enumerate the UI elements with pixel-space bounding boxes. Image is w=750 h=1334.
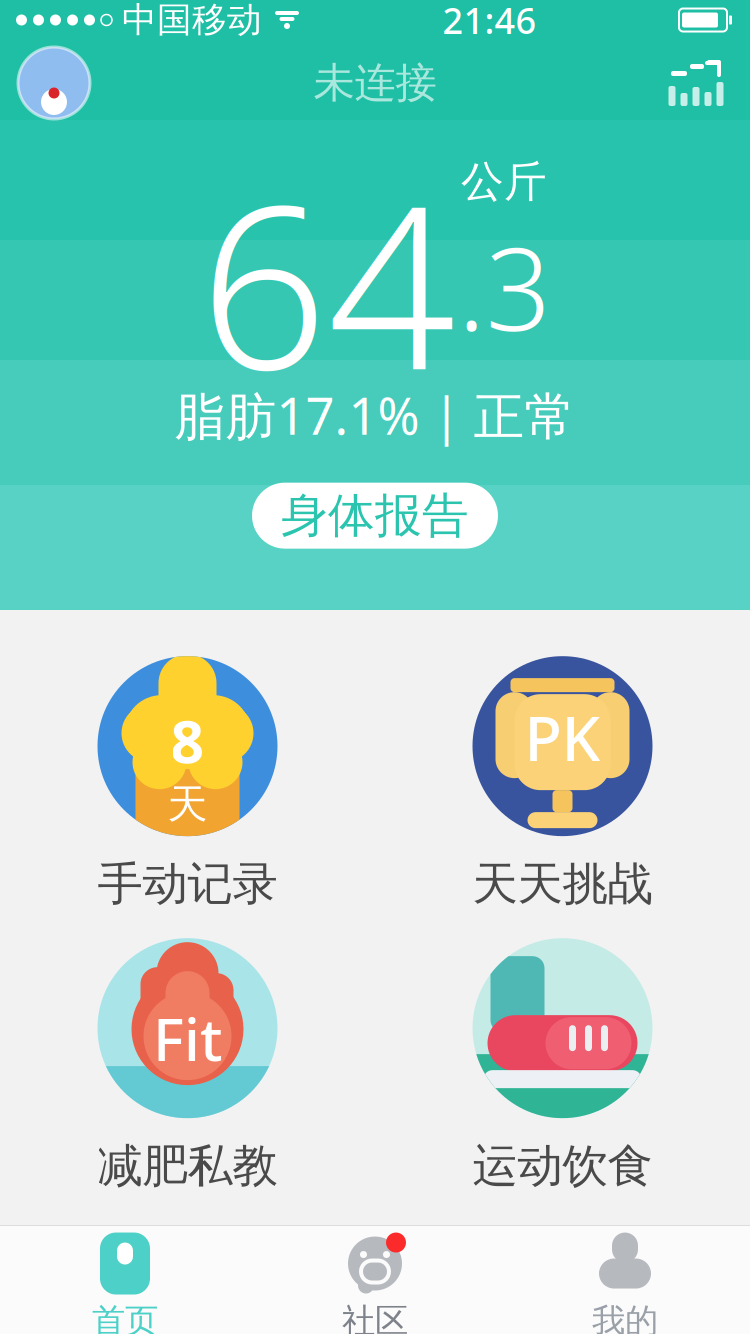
staticText: 未连接 [313,58,436,108]
button[interactable]: 数据趋势 [658,45,734,121]
staticText: .3 [457,210,550,362]
staticText: 社区 [342,1300,408,1334]
staticText: 减肥私教 [97,1138,277,1194]
staticText: PK [524,696,600,778]
button[interactable]: 身体报告 [252,483,498,549]
staticText: Fit [153,999,222,1077]
staticText: 身体报告 [281,487,469,544]
staticText: 脂肪17.1% | 正常 [174,381,575,449]
button[interactable]: 运动饮食 [375,940,750,1192]
button[interactable]: 社区 [250,1226,500,1334]
staticText: 天 [167,779,207,829]
staticText: 中国移动 [122,0,262,41]
staticText: 8 [170,702,204,779]
staticText: 公斤 [461,156,547,208]
button[interactable]: 我的 [500,1226,750,1334]
staticText: 天天挑战 [472,856,652,912]
staticText: 我的 [592,1300,658,1334]
staticText: 64 [199,134,455,431]
button[interactable]: PK [375,658,750,910]
staticText: 手动记录 [97,856,277,912]
staticText: 21:46 [442,0,536,44]
button[interactable]: 首页 [0,1226,250,1334]
button[interactable]: 个人头像 [16,45,92,121]
staticText: 首页 [92,1300,158,1334]
staticText: 运动饮食 [472,1138,652,1194]
button[interactable]: Fit [0,940,375,1192]
button[interactable]: 8 [0,658,375,910]
